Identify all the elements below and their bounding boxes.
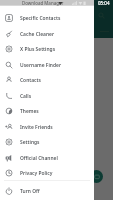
- button[interactable]: Search: [98, 12, 105, 19]
- button[interactable]: Cache Cleaner: [0, 26, 94, 42]
- button[interactable]: X Plus Settings: [0, 41, 94, 57]
- staticText: Calls: [20, 93, 32, 100]
- staticText: 05:04: [98, 0, 110, 6]
- button[interactable]: Turn Off: [0, 183, 94, 199]
- staticText: Settings: [20, 139, 40, 146]
- button[interactable]: New chat: [90, 170, 103, 183]
- staticText: Specific Contacts: [20, 15, 61, 22]
- button[interactable]: Official Channel: [0, 150, 94, 166]
- button[interactable]: Invite Friends: [0, 119, 94, 135]
- button[interactable]: Settings: [0, 134, 94, 150]
- button[interactable]: Privacy Policy: [0, 165, 94, 181]
- staticText: Cache Cleaner: [20, 31, 55, 38]
- button[interactable]: Username Finder: [0, 57, 94, 73]
- staticText: Contacts: [20, 77, 41, 84]
- staticText: X Plus Settings: [20, 46, 56, 53]
- staticText: Turn Off: [20, 188, 40, 195]
- staticText: Download Manager: [22, 0, 64, 6]
- staticText: Privacy Policy: [20, 170, 53, 177]
- button[interactable]: Specific Contacts: [0, 10, 94, 26]
- button[interactable]: Calls: [0, 88, 94, 104]
- staticText: Themes: [20, 108, 39, 115]
- button[interactable]: Themes: [0, 103, 94, 119]
- staticText: Invite Friends: [20, 124, 53, 131]
- staticText: Official Channel: [20, 155, 58, 162]
- button[interactable]: Contacts: [0, 72, 94, 88]
- staticText: Username Finder: [20, 62, 62, 69]
